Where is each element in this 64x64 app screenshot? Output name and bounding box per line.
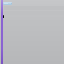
button[interactable]: Navigation rail <box>1 0 3 64</box>
button[interactable]: More options <box>3 2 12 5</box>
button[interactable]: Add <box>3 15 4 18</box>
